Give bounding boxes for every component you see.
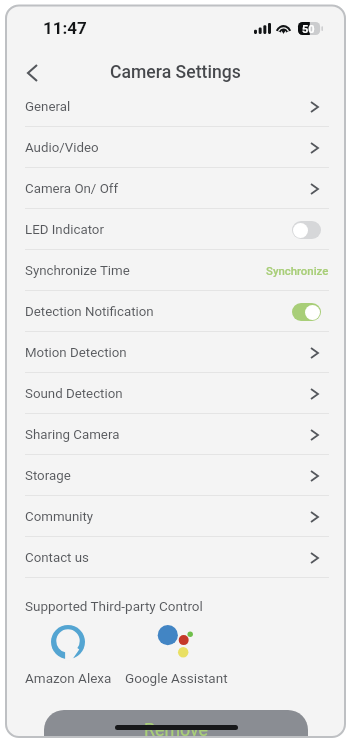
button[interactable]: Amazon Alexa (47, 621, 89, 663)
staticText: Camera On/ Off (25, 181, 119, 197)
button[interactable]: Sharing Camera (5, 414, 345, 455)
staticText: Storage (25, 468, 71, 484)
staticText: Amazon Alexa (25, 670, 112, 686)
staticText: Google Assistant (125, 670, 228, 686)
button[interactable]: Back (15, 55, 50, 90)
button[interactable]: Toggle on (292, 303, 321, 321)
staticText: General (25, 99, 71, 115)
staticText: Synchronize Time (25, 263, 130, 279)
staticText: Motion Detection (25, 345, 127, 361)
button[interactable]: Camera On/ Off (5, 168, 345, 209)
staticText: Remove (144, 719, 208, 737)
button[interactable]: General (5, 86, 345, 127)
button[interactable]: Google Assistant (155, 621, 199, 663)
button[interactable]: Remove (44, 710, 308, 737)
staticText: 50 (302, 23, 315, 36)
button[interactable]: Detection Notification (5, 291, 345, 332)
button[interactable]: Contact us (5, 537, 345, 578)
button[interactable]: Community (5, 496, 345, 537)
staticText: Camera Settings (110, 62, 241, 83)
staticText: 11:47 (43, 18, 87, 38)
staticText: Synchronize (266, 264, 329, 277)
staticText: Audio/Video (25, 140, 99, 156)
button[interactable]: Toggle off (292, 221, 321, 239)
staticText: Sound Detection (25, 386, 123, 402)
staticText: Sharing Camera (25, 427, 120, 443)
staticText: Detection Notification (25, 304, 154, 320)
staticText: Contact us (25, 550, 89, 566)
button[interactable]: Sound Detection (5, 373, 345, 414)
button[interactable]: Synchronize Time (5, 250, 345, 291)
staticText: LED Indicator (25, 222, 104, 238)
staticText: Community (25, 509, 94, 525)
button[interactable]: LED Indicator (5, 209, 345, 250)
button[interactable]: Motion Detection (5, 332, 345, 373)
staticText: Supported Third-party Control (25, 598, 203, 614)
button[interactable]: Audio/Video (5, 127, 345, 168)
button[interactable]: Storage (5, 455, 345, 496)
